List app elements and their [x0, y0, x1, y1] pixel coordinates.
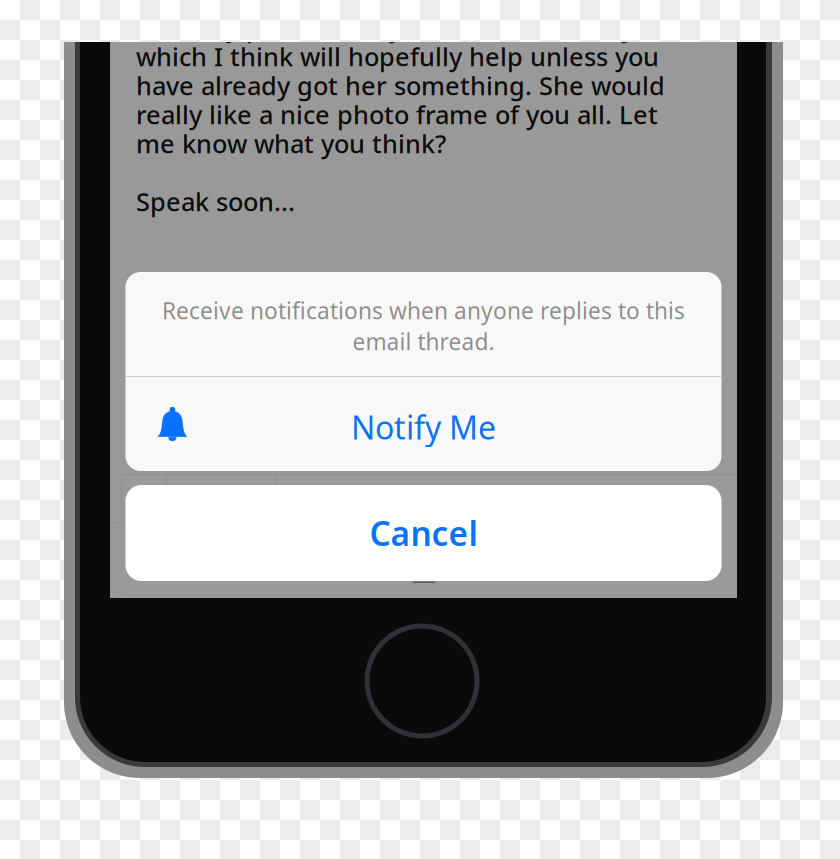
staticText: really like a nice photo frame of you al… [136, 98, 658, 131]
staticText: Cancel [369, 511, 477, 555]
staticText: which I think will hopefully help unless… [136, 40, 659, 73]
staticText: me know what you think? [136, 127, 446, 160]
button[interactable]: Cancel [125, 485, 721, 581]
staticText: birthday present for your mum, which I j… [136, 11, 668, 44]
staticText: Speak soon... [136, 185, 295, 218]
staticText: email thread. [352, 326, 494, 356]
button[interactable]: Notify Me [125, 377, 721, 471]
staticText: Notify Me [351, 406, 496, 448]
staticText: Receive notifications when anyone replie… [162, 295, 685, 325]
staticText: have already got her something. She woul… [136, 69, 665, 102]
